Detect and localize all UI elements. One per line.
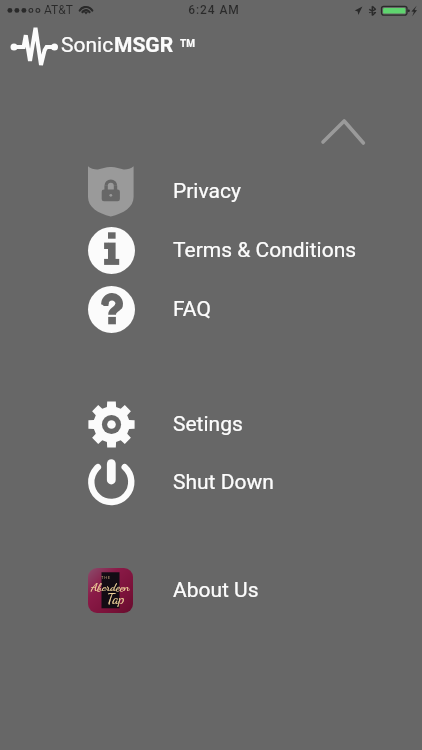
- button[interactable]: Collapse menu: [311, 107, 377, 155]
- staticText: Shut Down: [173, 470, 274, 495]
- button[interactable]: FAQ: [0, 280, 422, 338]
- button[interactable]: Terms & Conditions: [0, 221, 422, 279]
- button[interactable]: Shut Down: [0, 453, 422, 511]
- staticText: Privacy: [173, 179, 241, 204]
- staticText: Sonic: [61, 33, 114, 58]
- staticText: Setings: [173, 412, 243, 437]
- button[interactable]: Privacy: [0, 162, 422, 220]
- staticText: AT&T: [44, 3, 73, 17]
- staticText: 6:24 AM: [3, 3, 422, 17]
- button[interactable]: Setings: [0, 395, 422, 453]
- staticText: Terms & Conditions: [173, 238, 357, 263]
- staticText: FAQ: [173, 297, 211, 322]
- staticText: TM: [180, 38, 195, 50]
- staticText: Tap: [107, 590, 125, 607]
- staticText: Aberdeen: [91, 580, 130, 594]
- button[interactable]: THE: [0, 561, 422, 619]
- staticText: About Us: [173, 578, 259, 603]
- staticText: MSGR: [114, 33, 174, 58]
- staticText: THE: [101, 575, 111, 580]
